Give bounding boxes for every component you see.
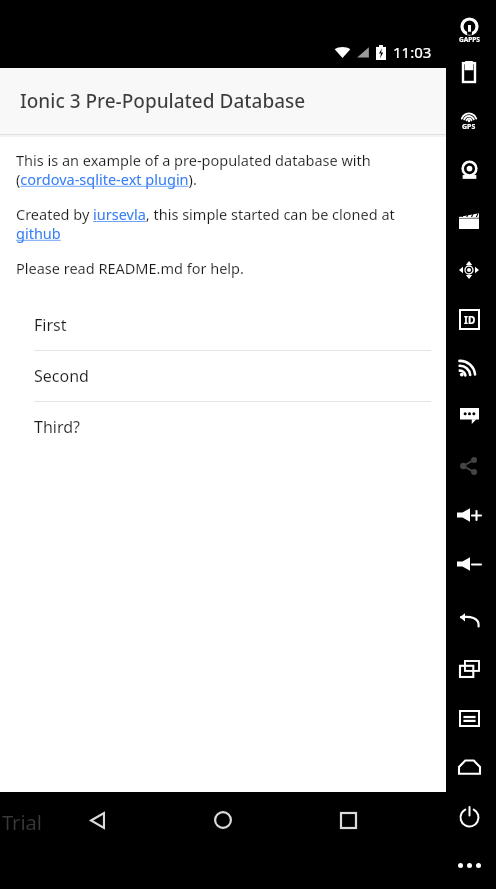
button[interactable]: Menu [447,696,491,740]
staticText: Second [34,365,89,387]
button[interactable]: Network [447,345,491,389]
staticText: GPS [462,122,476,132]
button[interactable]: GPS [447,99,491,143]
button[interactable]: Back [73,796,121,844]
staticText: Trial [2,809,42,836]
button[interactable]: GApps [447,9,491,53]
button[interactable]: Back [447,598,491,642]
button[interactable]: Power [447,795,491,839]
button[interactable]: Home [447,745,491,789]
staticText: 11:03 [393,42,432,62]
button[interactable]: Share [447,444,491,488]
staticText: Ionic 3 Pre-Populated Database [20,88,306,114]
staticText: Created by iursevla, this simple started… [16,204,395,243]
button[interactable]: Recent apps [324,796,372,844]
button[interactable]: Battery [447,49,491,93]
staticText: First [34,314,67,336]
staticText: Please read README.md for help. [16,258,244,278]
button[interactable]: Screen record [447,198,491,242]
staticText: ID [464,313,476,327]
button[interactable]: First [0,300,446,350]
button[interactable]: Volume down [447,542,491,586]
button[interactable]: Home [199,796,247,844]
staticText: GAPPS [459,35,480,44]
button[interactable]: Second [0,351,446,401]
button[interactable]: Recent apps [447,647,491,691]
button[interactable]: Volume up [447,493,491,537]
staticText: Third? [34,416,80,438]
button[interactable]: SMS [447,394,491,438]
button[interactable]: More [447,843,491,887]
button[interactable]: D-pad [447,248,491,292]
button[interactable]: Camera [447,148,491,192]
staticText: This is an example of a pre-populated da… [16,150,371,189]
button[interactable]: Third? [0,402,446,452]
button[interactable]: Ionic 3 Pre-Populated Database [0,68,446,134]
button[interactable]: Identifiers [447,297,491,341]
